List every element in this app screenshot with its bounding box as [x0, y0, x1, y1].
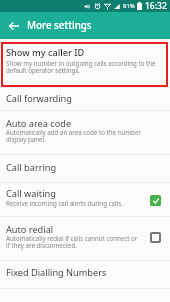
staticText: Auto redial — [6, 223, 54, 236]
staticText: Fixed Dialling Numbers — [6, 266, 107, 279]
staticText: 16:32 — [145, 0, 167, 12]
staticText: Auto area code — [6, 117, 72, 130]
button[interactable]: Call forwarding — [0, 87, 170, 110]
button[interactable]: Call barring — [0, 154, 170, 182]
staticText: Show my number in outgoing calls accordi… — [6, 59, 156, 75]
button[interactable]: Auto redial — [0, 216, 170, 260]
staticText: Show my caller ID — [6, 46, 85, 59]
staticText: Call barring — [6, 161, 57, 174]
button[interactable]: Back — [0, 12, 27, 39]
staticText: Receive incoming call alerts during call… — [6, 199, 123, 207]
staticText: Automatically redial if calls cannot con… — [6, 234, 138, 250]
button[interactable]: Call waiting — [0, 182, 170, 216]
staticText: Call forwarding — [6, 92, 72, 105]
button[interactable]: Fixed Dialling Numbers — [0, 260, 170, 288]
button[interactable]: Show my caller ID — [1, 42, 168, 87]
staticText: Automatically add an area code to the nu… — [6, 128, 141, 144]
staticText: Call waiting — [6, 187, 56, 200]
button[interactable]: Auto area code — [0, 110, 170, 154]
staticText: 81% — [123, 2, 135, 10]
staticText: More settings — [27, 19, 92, 32]
